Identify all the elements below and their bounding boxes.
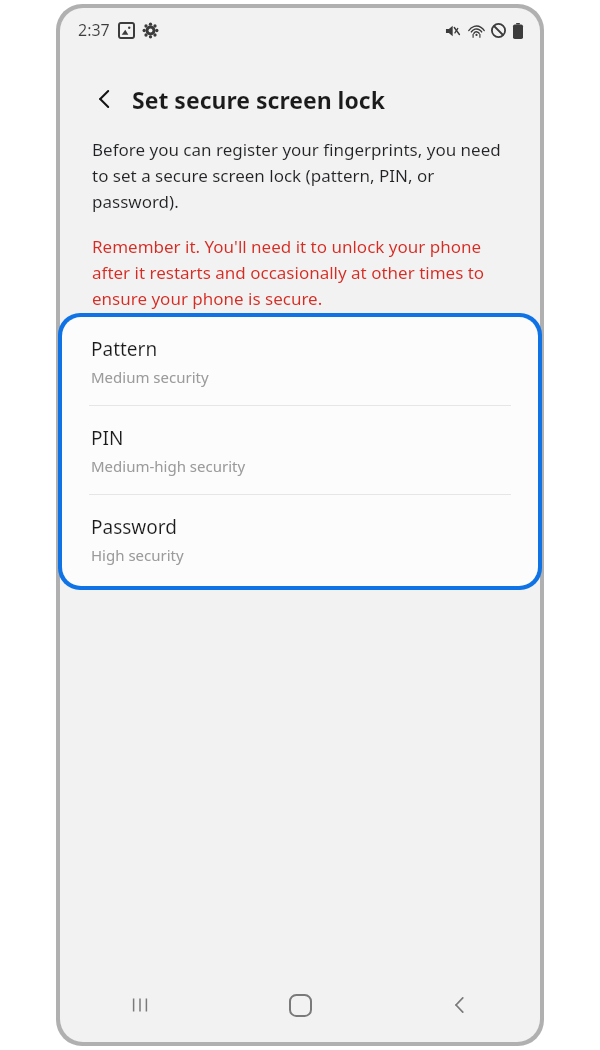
button[interactable]: Back xyxy=(88,82,122,116)
button[interactable]: Back xyxy=(380,968,540,1042)
button[interactable]: Password xyxy=(62,495,538,583)
staticText: Set secure screen lock xyxy=(132,84,385,115)
staticText: PIN xyxy=(91,425,124,451)
staticText: High security xyxy=(91,545,184,565)
staticText: Password xyxy=(91,514,177,540)
button[interactable]: Home xyxy=(220,968,380,1042)
button[interactable]: PIN xyxy=(62,406,538,494)
staticText: Pattern xyxy=(91,336,158,362)
staticText: Remember it. You'll need it to unlock yo… xyxy=(92,235,514,310)
button[interactable]: Recent apps xyxy=(60,968,220,1042)
staticText: Medium security xyxy=(91,367,209,387)
staticText: Before you can register your fingerprint… xyxy=(92,138,514,213)
staticText: 2:37 xyxy=(78,19,110,41)
button[interactable]: Pattern xyxy=(62,317,538,405)
staticText: Medium-high security xyxy=(91,456,246,476)
